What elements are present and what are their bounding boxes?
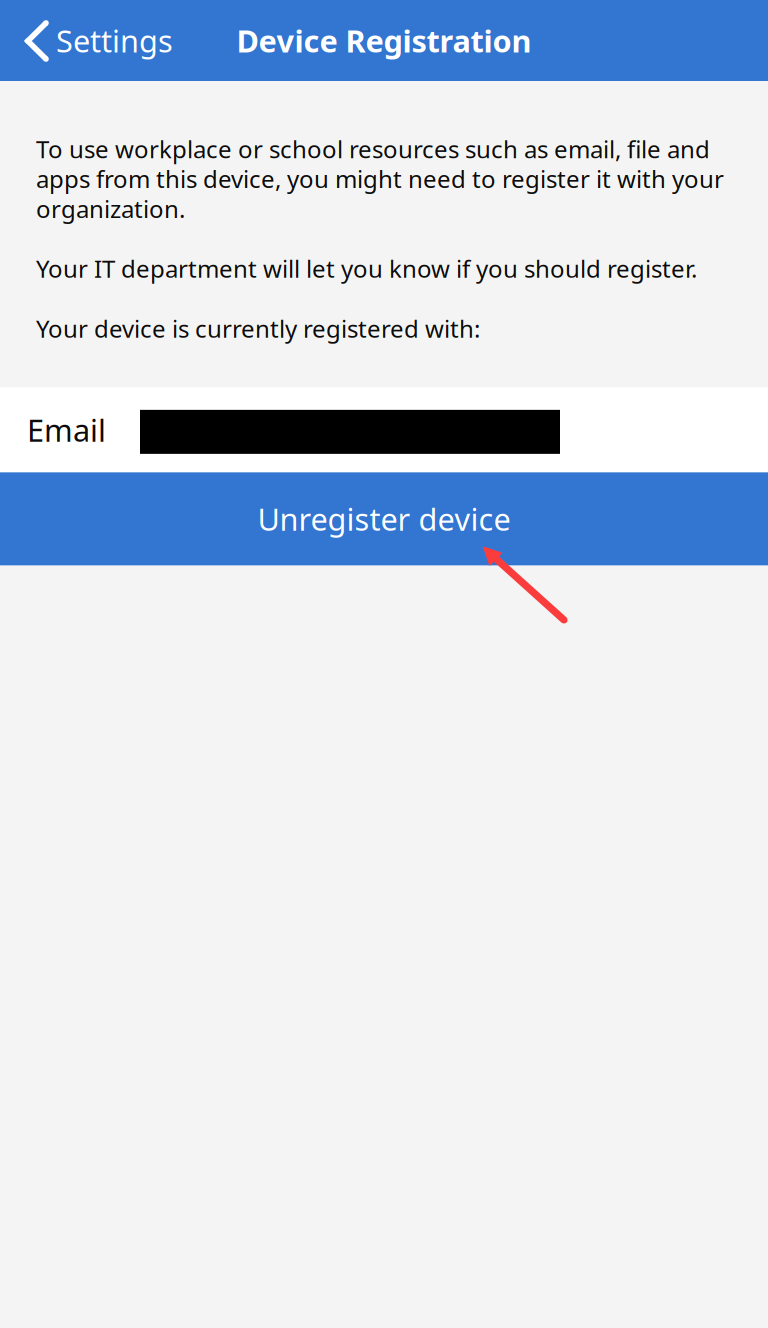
staticText: Unregister device	[257, 498, 510, 539]
staticText: Your device is currently registered with…	[36, 312, 480, 344]
staticText: Settings	[56, 20, 173, 61]
staticText: To use workplace or school resources suc…	[36, 133, 724, 225]
button[interactable]: Unregister device	[0, 472, 768, 565]
staticText: Email	[27, 409, 106, 450]
staticText: Your IT department will let you know if …	[36, 253, 697, 284]
staticText: Device Registration	[236, 20, 531, 61]
button[interactable]: Settings	[0, 0, 189, 81]
